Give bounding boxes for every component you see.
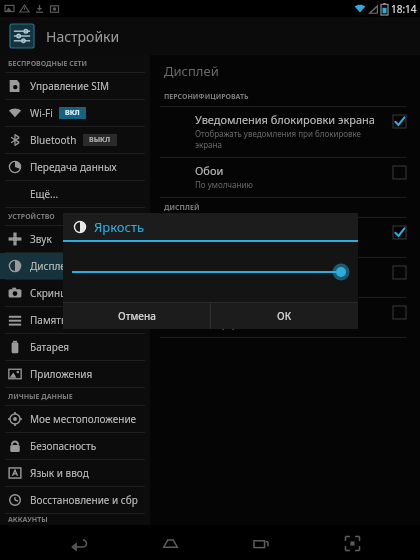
button[interactable]: Дисплей — [150, 298, 420, 337]
staticText: Яркость — [94, 218, 145, 236]
button[interactable]: Toggle — [393, 115, 406, 128]
staticText: ВЫКЛ — [89, 135, 111, 145]
staticText: Уведомления блокировки экрана — [195, 112, 375, 127]
button[interactable]: ОК — [211, 303, 358, 329]
button[interactable]: Bluetooth — [0, 127, 150, 153]
staticText: Мое местоположение — [30, 412, 137, 426]
button[interactable]: Язык и ввод — [0, 460, 150, 486]
button[interactable]: Recents — [244, 526, 278, 560]
button[interactable]: Уведомления блокировки экрана — [150, 107, 420, 157]
button[interactable]: Память — [0, 307, 150, 333]
other: Settings — [10, 24, 34, 48]
staticText: АККАУНТЫ — [8, 515, 48, 525]
staticText: ЛИЧНЫЕ ДАННЫЕ — [8, 392, 73, 402]
button[interactable]: Ещё... — [0, 181, 150, 207]
staticText: УСТРОЙСТВО — [8, 212, 55, 222]
button[interactable]: Спящий режим — [150, 258, 420, 297]
button[interactable]: Wi-Fi — [0, 100, 150, 126]
button[interactable]: Приложения — [0, 361, 150, 387]
button[interactable]: Безопасность — [0, 433, 150, 459]
staticText: Восстановление и сбр — [30, 493, 138, 507]
button[interactable]: Отмена — [63, 303, 210, 329]
staticText: Отображать уведомления при блокировке эк… — [195, 128, 362, 150]
staticText: Отмена — [118, 309, 156, 323]
staticText: Обои — [195, 163, 224, 178]
staticText: БЕСПРОВОДНЫЕ СЕТИ — [8, 59, 88, 69]
button[interactable]: Screenshot — [335, 526, 369, 560]
button[interactable]: Звук — [0, 226, 150, 252]
button[interactable]: Toggle — [393, 226, 406, 239]
staticText: Язык и ввод — [30, 466, 89, 480]
staticText: Ещё... — [30, 187, 59, 201]
staticText: ВКЛ — [65, 108, 80, 118]
staticText: Приложения — [30, 367, 93, 381]
button[interactable]: Мое местоположение — [0, 406, 150, 432]
staticText: Дисплей — [30, 259, 73, 273]
staticText: Скриншот — [30, 286, 80, 300]
staticText: ОК — [277, 309, 292, 323]
staticText: Передача данных — [30, 160, 117, 174]
staticText: Батарея — [30, 340, 70, 354]
button[interactable]: Размер шрифта — [150, 218, 420, 257]
button[interactable]: Toggle — [393, 306, 406, 319]
staticText: ПЕРСОНИФИЦИРОВАТЬ — [164, 92, 249, 102]
staticText: Дисплей — [164, 62, 219, 80]
button[interactable]: Управление SIM — [0, 73, 150, 99]
staticText: Спящий режим — [195, 263, 278, 278]
staticText: минимуму — [195, 319, 237, 330]
staticText: Wi-Fi — [30, 106, 53, 120]
button[interactable]: Back — [62, 526, 96, 560]
staticText: Огромный — [195, 239, 237, 250]
button[interactable]: Toggle — [393, 166, 406, 179]
button[interactable]: Скриншот — [0, 280, 150, 306]
staticText: Звук — [30, 232, 52, 246]
button[interactable]: Toggle — [393, 266, 406, 279]
button[interactable]: Home — [153, 526, 187, 560]
staticText: ДИСПЛЕЙ — [164, 203, 200, 213]
button[interactable]: Обои — [150, 158, 420, 197]
button[interactable]: Settings — [0, 17, 420, 55]
staticText: 18:14 — [391, 2, 417, 16]
staticText: Bluetooth — [30, 133, 77, 147]
button[interactable]: Передача данных — [0, 154, 150, 180]
button[interactable]: Дисплей — [0, 253, 150, 279]
staticText: Настройки — [46, 27, 120, 46]
staticText: По умолчанию — [195, 179, 253, 190]
button[interactable]: Восстановление и сбр — [0, 487, 150, 513]
staticText: Управление SIM — [30, 79, 110, 93]
staticText: Память — [30, 313, 67, 327]
button[interactable]: Батарея — [0, 334, 150, 360]
staticText: Безопасность — [30, 439, 97, 453]
